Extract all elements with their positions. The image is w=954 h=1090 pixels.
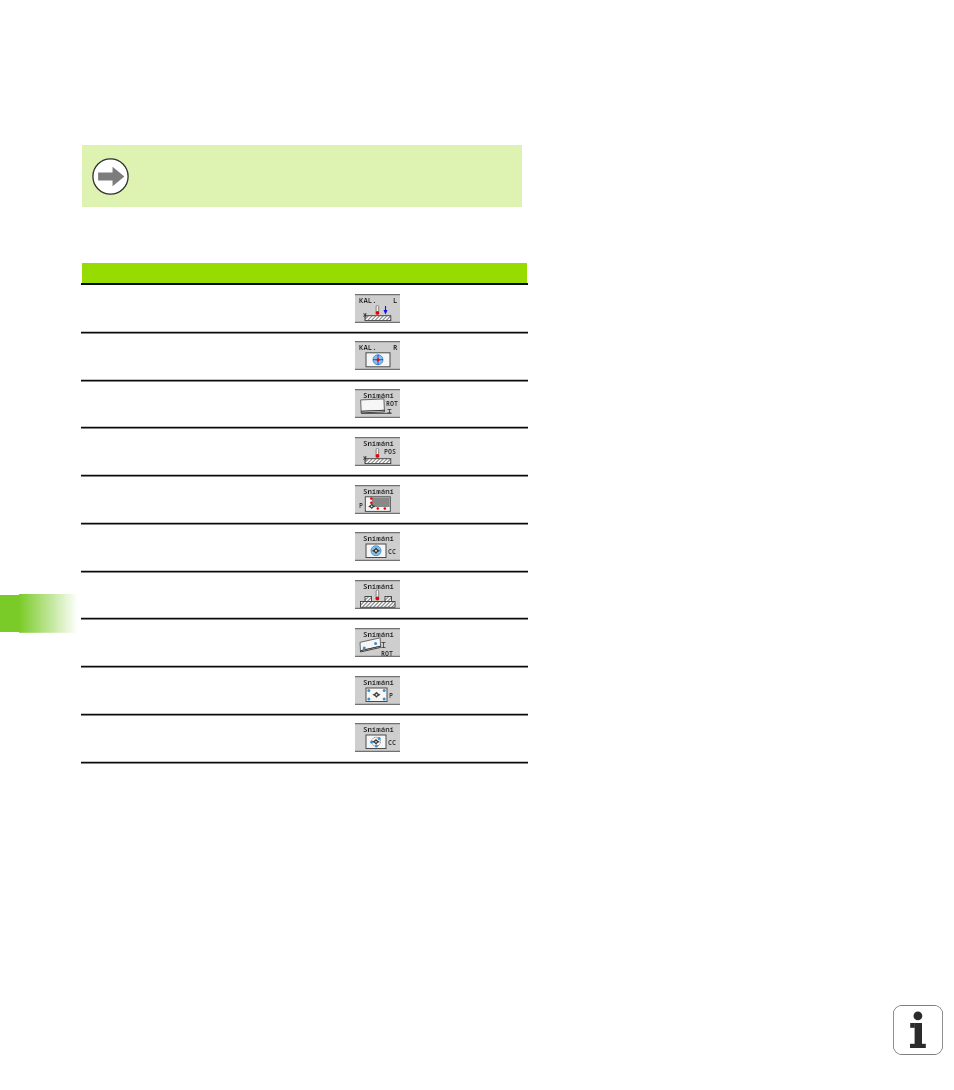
button[interactable]: Snimani CC softkey bbox=[355, 723, 400, 752]
staticText: Snímání bbox=[363, 533, 395, 543]
button[interactable]: Snimani softkey bbox=[355, 580, 400, 609]
button[interactable]: Snimani ROT softkey bbox=[355, 628, 400, 657]
staticText: KAL. bbox=[359, 342, 377, 352]
staticText: Snímání bbox=[363, 677, 395, 687]
staticText: Snímání bbox=[363, 629, 395, 639]
button[interactable]: Snimani CC softkey bbox=[355, 532, 400, 561]
button[interactable]: Snimani P softkey bbox=[355, 676, 400, 705]
staticText: Snímání bbox=[363, 724, 395, 734]
button[interactable]: Snimani ROT softkey bbox=[355, 389, 400, 418]
staticText: KAL. bbox=[359, 295, 377, 305]
button[interactable]: Snimani POS softkey bbox=[355, 437, 400, 466]
staticText: CC bbox=[388, 547, 396, 556]
button[interactable]: Information bbox=[893, 1005, 943, 1055]
button[interactable]: KAL. R softkey bbox=[355, 341, 400, 370]
button[interactable]: Snimani P softkey bbox=[355, 485, 400, 514]
staticText: CC bbox=[388, 738, 396, 747]
staticText: POS bbox=[384, 447, 396, 456]
staticText: P bbox=[389, 691, 393, 700]
staticText: ROT bbox=[381, 649, 393, 658]
staticText: Snímání bbox=[363, 486, 395, 496]
staticText: Snímání bbox=[363, 390, 395, 400]
staticText: ROT bbox=[386, 399, 398, 408]
staticText: P bbox=[359, 501, 363, 510]
staticText: L bbox=[393, 295, 398, 305]
staticText: Snímání bbox=[363, 581, 395, 591]
staticText: R bbox=[393, 342, 398, 352]
button[interactable]: Note callout bbox=[82, 145, 522, 207]
staticText: Snímání bbox=[363, 438, 395, 448]
button[interactable]: KAL. L softkey bbox=[355, 294, 400, 323]
